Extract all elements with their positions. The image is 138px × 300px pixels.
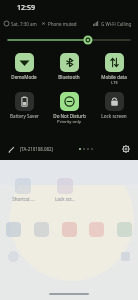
staticText: LTE: [111, 80, 118, 86]
button[interactable]: DemoMode: [3, 53, 45, 80]
staticText: Priority only: [57, 119, 81, 125]
button[interactable]: App: [89, 222, 104, 237]
staticText: Lock scr...: [55, 196, 75, 202]
button[interactable]: Settings: [120, 143, 132, 155]
staticText: Mobile data: [101, 74, 127, 80]
button[interactable]: Do Not Disturb: [48, 92, 90, 125]
staticText: Sat, 7:30 am: [11, 21, 37, 27]
button[interactable]: Assistant: [121, 252, 130, 261]
button[interactable]: App: [34, 222, 49, 237]
button[interactable]: Lock scr...: [48, 178, 82, 202]
button[interactable]: Shortcut ...: [6, 178, 40, 202]
staticText: Phone muted: [48, 21, 77, 27]
staticText: Shortcut ...: [12, 196, 35, 202]
button[interactable]: Lock screen: [93, 92, 135, 119]
staticText: G Wi-Fi Calling: [101, 21, 132, 27]
staticText: Battery Saver: [10, 113, 39, 119]
button[interactable]: Edit tiles: [6, 144, 17, 155]
staticText: DemoMode: [11, 74, 37, 80]
staticText: Bluetooth: [58, 74, 80, 80]
staticText: (TA-210108.082): [20, 146, 53, 152]
staticText: 12:59: [17, 3, 35, 13]
staticText: Lock screen: [101, 113, 127, 119]
button[interactable]: App: [117, 222, 132, 237]
button[interactable]: Battery Saver: [3, 92, 45, 119]
staticText: Do Not Disturb: [53, 113, 86, 119]
button[interactable]: App: [62, 222, 77, 237]
button[interactable]: Brightness: [8, 34, 130, 46]
button[interactable]: Search: [8, 251, 19, 262]
button[interactable]: App: [6, 222, 21, 237]
button[interactable]: Bluetooth: [48, 53, 90, 80]
button[interactable]: Mobile data: [93, 53, 135, 86]
